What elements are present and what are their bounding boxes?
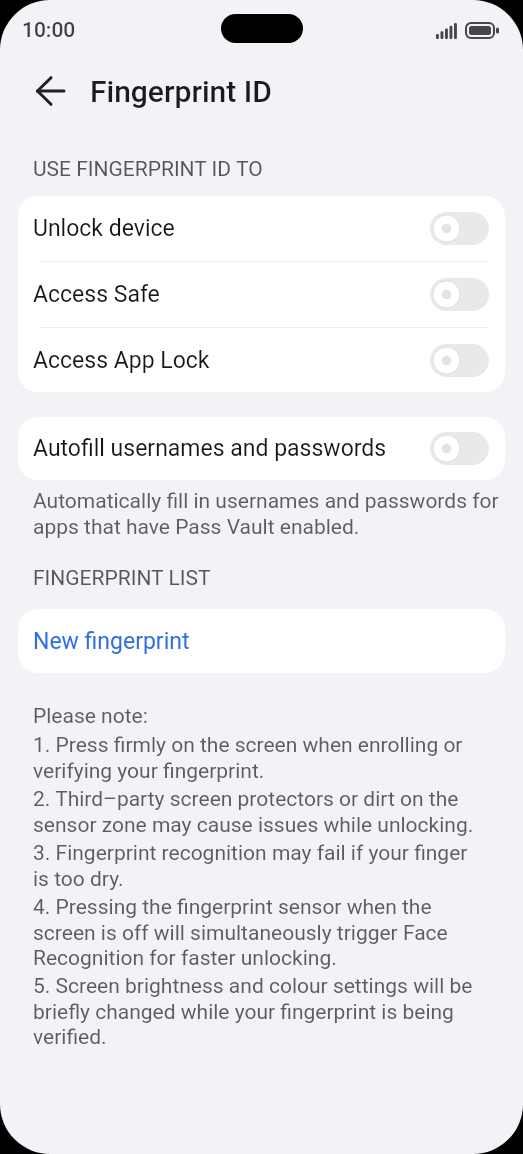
button[interactable]: Access Safe <box>18 262 505 327</box>
staticText: Automatically fill in usernames and pass… <box>33 489 490 539</box>
button[interactable]: New fingerprint <box>18 609 505 673</box>
staticText: FINGERPRINT LIST <box>33 566 211 591</box>
button[interactable]: Autofill usernames and passwords <box>18 417 505 480</box>
staticText: 2. Third–party screen protectors or dirt… <box>33 787 474 837</box>
staticText: 5. Screen brightness and colour settings… <box>33 974 473 1049</box>
button[interactable]: Access App Lock <box>18 328 505 392</box>
staticText: 10:00 <box>22 18 76 43</box>
button[interactable] <box>24 71 64 111</box>
staticText: USE FINGERPRINT ID TO <box>33 157 263 182</box>
staticText: Fingerprint ID <box>90 74 272 109</box>
staticText: Access Safe <box>33 281 160 308</box>
staticText: Unlock device <box>33 215 175 242</box>
staticText: New fingerprint <box>33 628 190 655</box>
staticText: 1. Press firmly on the screen when enrol… <box>33 733 463 783</box>
button[interactable]: Unlock device <box>18 196 505 261</box>
staticText: 3. Fingerprint recognition may fail if y… <box>33 841 468 891</box>
staticText: Access App Lock <box>33 347 210 374</box>
staticText: Autofill usernames and passwords <box>33 435 387 462</box>
staticText: Please note: <box>33 704 148 729</box>
staticText: 4. Pressing the fingerprint sensor when … <box>33 895 448 970</box>
